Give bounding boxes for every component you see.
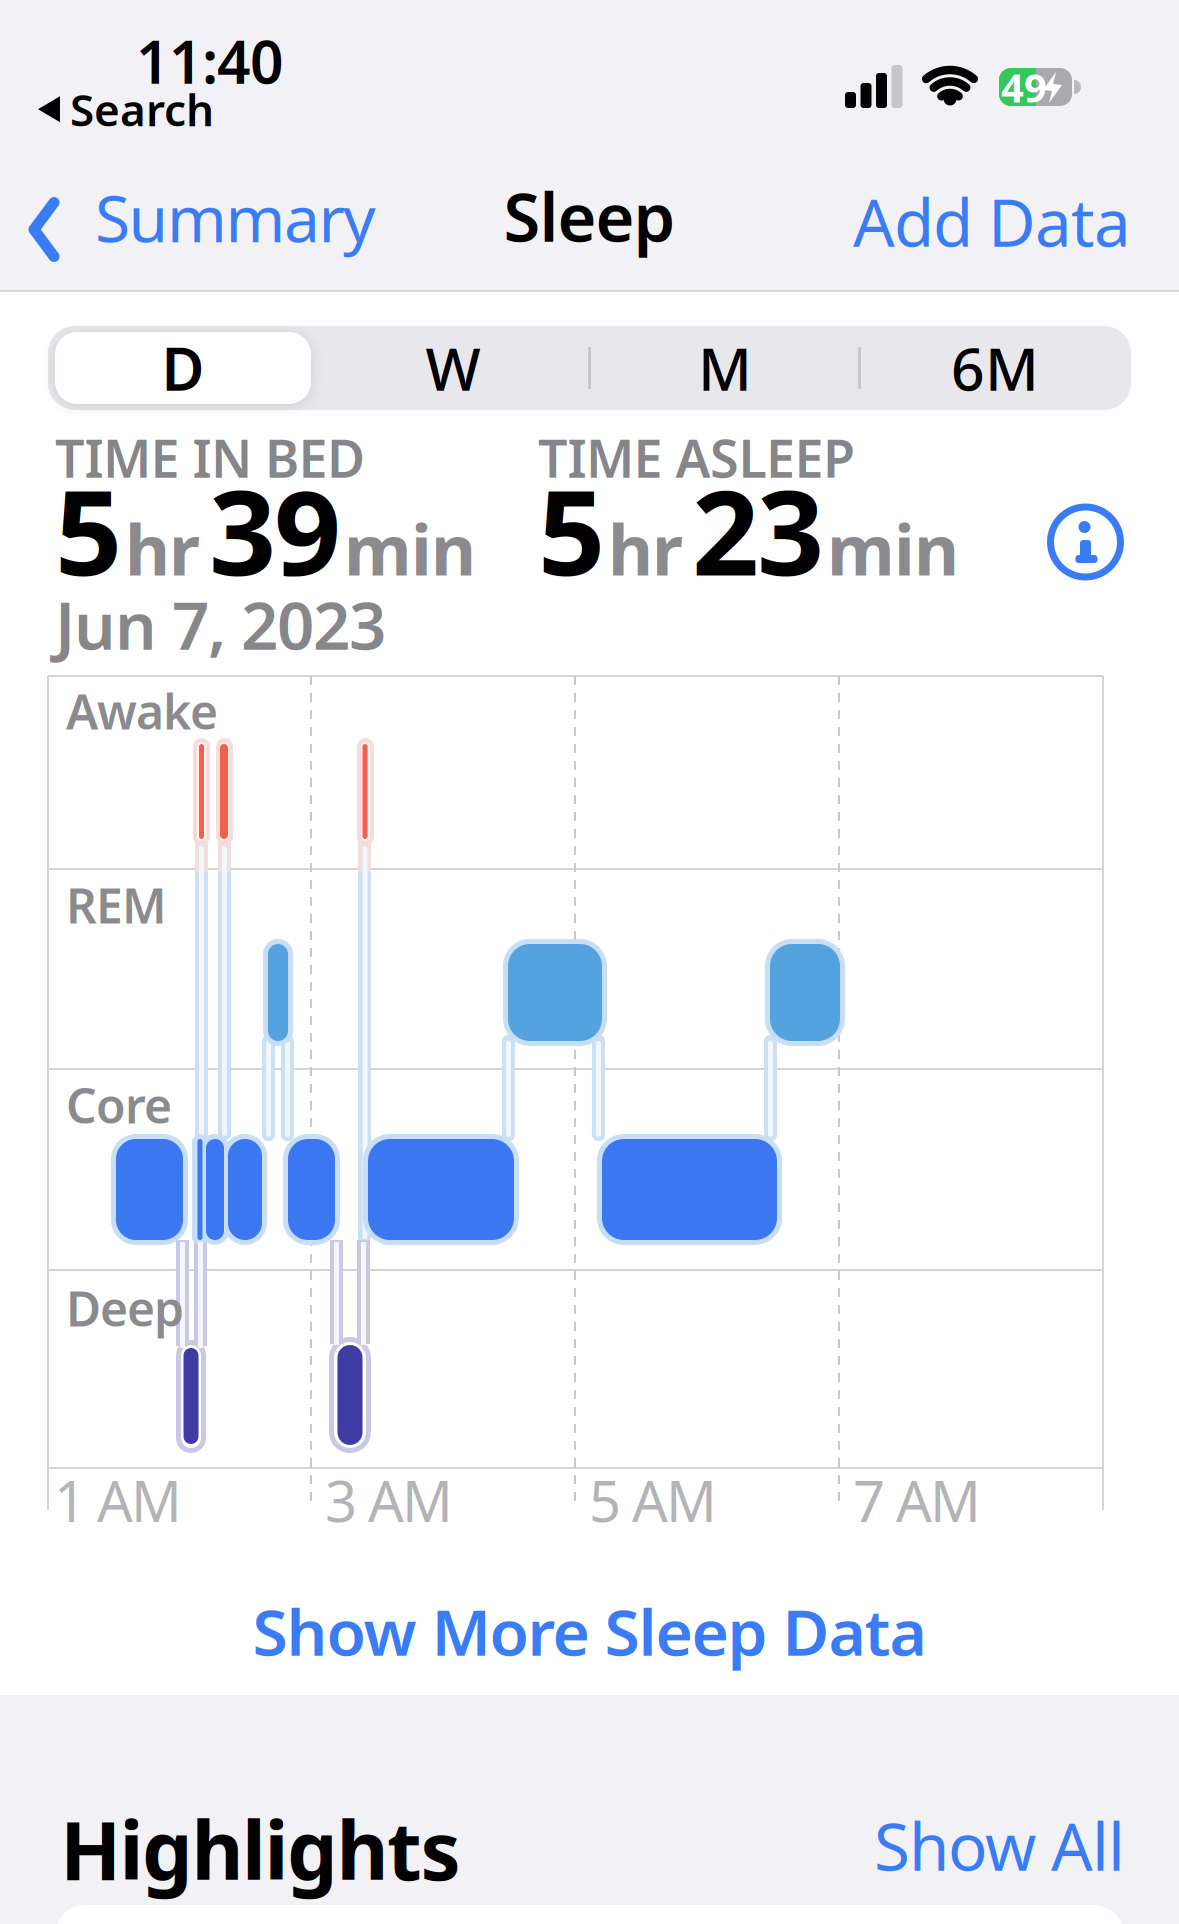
button[interactable]: Show All [874, 1802, 1125, 1889]
button[interactable]: W [321, 326, 585, 410]
button[interactable]: M [593, 326, 857, 410]
staticText: hr [125, 502, 200, 595]
staticText: 39 [209, 452, 341, 608]
staticText: 5 AM [589, 1463, 717, 1537]
button[interactable]: Show More Sleep Data [252, 1588, 926, 1673]
staticText: W [425, 329, 480, 407]
button[interactable]: D [51, 326, 315, 410]
staticText: min [827, 502, 959, 595]
staticText: 5 [538, 452, 605, 608]
staticText: Summary [95, 175, 376, 260]
button[interactable]: Back to Summary [31, 175, 376, 260]
staticText: Add Data [853, 178, 1131, 265]
staticText: min [344, 502, 476, 595]
staticText: 11:40 [136, 22, 284, 100]
staticText: 5 [55, 452, 122, 608]
staticText: 1 AM [54, 1463, 182, 1537]
staticText: Show All [874, 1802, 1125, 1889]
staticText: Deep [66, 1276, 184, 1340]
staticText: Sleep [503, 172, 675, 260]
staticText: REM [66, 873, 167, 937]
staticText: TIME IN BED [55, 423, 365, 492]
staticText: M [698, 329, 752, 407]
staticText: TIME ASLEEP [538, 423, 855, 492]
staticText: 49 [1001, 60, 1047, 113]
staticText: 3 AM [325, 1463, 453, 1537]
staticText: 7 AM [853, 1463, 981, 1537]
button[interactable]: Back to Search [38, 80, 214, 138]
staticText: Highlights [60, 1796, 460, 1902]
button[interactable]: 6M [863, 326, 1127, 410]
button[interactable]: Add Data [853, 178, 1131, 265]
staticText: Search [70, 80, 214, 138]
staticText: 6M [951, 329, 1039, 407]
staticText: D [161, 329, 204, 407]
staticText: Core [66, 1073, 172, 1137]
staticText: Jun 7, 2023 [55, 581, 386, 668]
staticText: Show More Sleep Data [252, 1588, 926, 1673]
staticText: hr [608, 502, 683, 595]
staticText: 23 [692, 452, 824, 608]
staticText: Awake [66, 679, 218, 743]
button[interactable]: About Sleep [1047, 503, 1124, 580]
